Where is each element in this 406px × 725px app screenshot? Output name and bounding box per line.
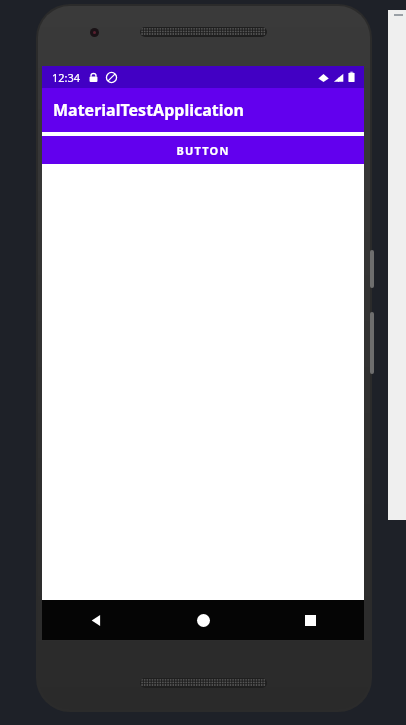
staticText: BUTTON — [176, 143, 230, 158]
button[interactable]: Recent apps — [257, 600, 364, 640]
button[interactable]: Home — [150, 600, 257, 640]
button[interactable]: Back — [42, 600, 150, 640]
staticText: 12:34 — [52, 70, 81, 85]
button[interactable]: BUTTON — [42, 136, 364, 164]
staticText: MaterialTestApplication — [53, 99, 244, 121]
